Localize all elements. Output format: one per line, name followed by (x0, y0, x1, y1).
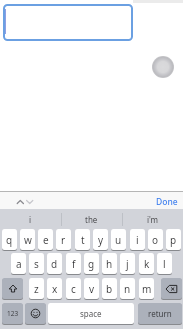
staticText: return (148, 308, 172, 319)
staticText: t (81, 233, 85, 247)
staticText: p (170, 233, 177, 247)
button[interactable]: m (139, 278, 154, 299)
button[interactable]: return (138, 303, 182, 324)
staticText: a (16, 257, 22, 271)
button[interactable]: t (75, 229, 90, 250)
button[interactable]: f (66, 253, 81, 274)
button[interactable] (2, 278, 23, 299)
button[interactable]: u (111, 229, 126, 250)
button[interactable] (161, 278, 182, 299)
button[interactable]: o (148, 229, 163, 250)
button[interactable]: q (2, 229, 17, 250)
button[interactable]: c (66, 278, 81, 299)
button[interactable]: n (120, 278, 135, 299)
staticText: i (29, 214, 32, 225)
button[interactable] (3, 4, 133, 41)
button[interactable]: i'm (122, 209, 183, 229)
button[interactable] (25, 303, 46, 324)
staticText: d (51, 257, 58, 271)
button[interactable]: e (38, 229, 53, 250)
button[interactable]: the (61, 209, 122, 229)
button[interactable]: d (47, 253, 62, 274)
button[interactable]: w (20, 229, 35, 250)
staticText: m (142, 282, 152, 296)
button[interactable]: Done (153, 195, 180, 208)
staticText: n (124, 282, 131, 296)
staticText: the (85, 214, 98, 225)
staticText: g (88, 257, 95, 271)
button[interactable]: x (47, 278, 62, 299)
button[interactable]: h (102, 253, 117, 274)
staticText: l (163, 257, 166, 271)
staticText: i (136, 233, 139, 247)
staticText: i'm (147, 214, 159, 225)
button[interactable]: y (93, 229, 108, 250)
button[interactable]: a (11, 253, 26, 274)
button[interactable]: i (0, 209, 61, 229)
staticText: o (152, 233, 159, 247)
staticText: b (106, 282, 113, 296)
button[interactable]: i (130, 229, 145, 250)
staticText: x (52, 282, 58, 296)
button[interactable]: g (84, 253, 99, 274)
button[interactable]: space (48, 303, 134, 324)
staticText: s (34, 257, 39, 271)
staticText: q (6, 233, 13, 247)
button[interactable]: r (56, 229, 71, 250)
staticText: e (43, 233, 49, 247)
button[interactable]: j (120, 253, 135, 274)
button[interactable]: l (157, 253, 172, 274)
staticText: h (106, 257, 113, 271)
staticText: 123 (7, 309, 19, 318)
staticText: w (24, 233, 32, 247)
staticText: y (98, 233, 104, 247)
staticText: Done (156, 196, 178, 208)
button[interactable]: k (139, 253, 154, 274)
button[interactable]: p (166, 229, 181, 250)
staticText: v (89, 282, 95, 296)
button[interactable]: z (29, 278, 44, 299)
staticText: z (34, 282, 39, 296)
staticText: c (71, 282, 76, 296)
staticText: k (144, 257, 150, 271)
button[interactable]: v (84, 278, 99, 299)
button[interactable]: s (29, 253, 44, 274)
staticText: u (115, 233, 122, 247)
staticText: j (126, 257, 129, 271)
button[interactable]: b (102, 278, 117, 299)
staticText: r (61, 233, 66, 247)
staticText: space (80, 308, 102, 319)
button[interactable]: 123 (2, 303, 23, 324)
staticText: f (72, 257, 76, 271)
